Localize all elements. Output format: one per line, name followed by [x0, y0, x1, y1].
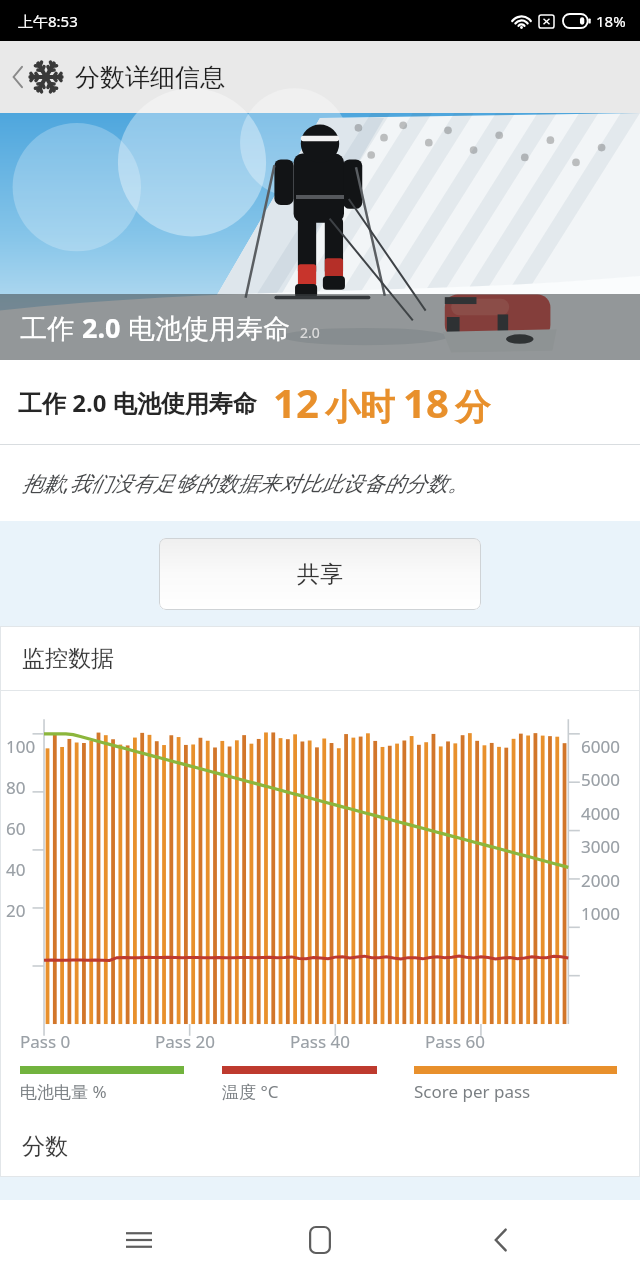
button[interactable]: Back: [459, 1200, 543, 1280]
staticText: 分: [455, 385, 490, 429]
staticText: 温度 °C: [222, 1080, 279, 1103]
staticText: 电池使用寿命: [128, 312, 290, 346]
staticText: 60: [6, 817, 26, 840]
staticText: 2.0: [300, 323, 320, 342]
staticText: 12: [273, 375, 319, 429]
button[interactable]: 监控数据: [0, 626, 640, 690]
staticText: 3000: [581, 835, 620, 858]
staticText: Pass 40: [290, 1030, 350, 1053]
button[interactable]: Recent apps: [97, 1200, 181, 1280]
staticText: 小时: [325, 385, 395, 429]
staticText: Pass 20: [155, 1030, 215, 1053]
staticText: 18: [403, 375, 449, 429]
staticText: 18%: [596, 11, 626, 31]
staticText: 分数详细信息: [75, 62, 225, 93]
button[interactable]: Back: [0, 41, 640, 113]
staticText: 2000: [581, 869, 620, 892]
staticText: 20: [6, 899, 26, 922]
staticText: 共享: [297, 560, 343, 589]
button[interactable]: 分数: [0, 1115, 640, 1177]
button[interactable]: 工作 2.0 电池使用寿命: [0, 360, 640, 444]
staticText: 1000: [581, 902, 620, 925]
staticText: 4000: [581, 802, 620, 825]
staticText: 上午8:53: [18, 11, 78, 31]
staticText: 6000: [581, 735, 620, 758]
staticText: 工作: [20, 309, 82, 346]
button[interactable]: 工作: [0, 113, 640, 360]
button[interactable]: Home: [278, 1200, 362, 1280]
button[interactable]: 共享: [159, 538, 481, 610]
staticText: 工作 2.0 电池使用寿命: [18, 386, 257, 419]
staticText: 40: [6, 858, 26, 881]
staticText: 100: [6, 735, 36, 758]
staticText: Score per pass: [414, 1080, 531, 1103]
staticText: 80: [6, 776, 26, 799]
staticText: Pass 0: [20, 1030, 71, 1053]
staticText: 5000: [581, 768, 620, 791]
staticText: 分数: [22, 1132, 68, 1161]
staticText: 电池电量 %: [20, 1080, 107, 1103]
staticText: 监控数据: [22, 644, 114, 673]
staticText: Pass 60: [425, 1030, 485, 1053]
staticText: 2.0: [82, 309, 128, 346]
staticText: 抱歉,我们没有足够的数据来对比此设备的分数。: [22, 469, 469, 498]
